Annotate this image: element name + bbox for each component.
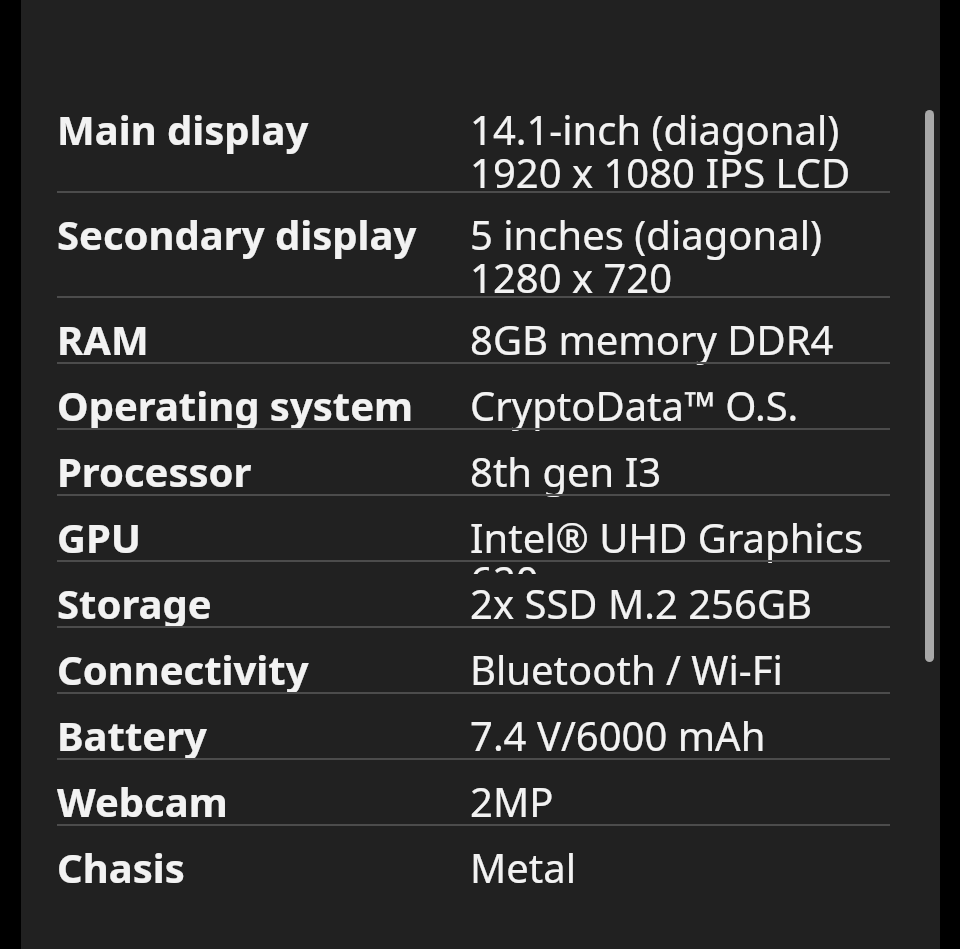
staticText: Webcam — [57, 774, 228, 828]
staticText: Connectivity — [57, 642, 309, 696]
staticText: Storage — [57, 576, 212, 630]
button[interactable]: Connectivity — [57, 628, 890, 692]
staticText: CryptoData™ O.S. — [470, 378, 890, 432]
staticText: Secondary display — [57, 207, 417, 261]
button[interactable]: Processor — [57, 430, 890, 494]
button[interactable]: Storage — [57, 562, 890, 626]
staticText: Main display — [57, 102, 309, 156]
button[interactable]: Webcam — [57, 760, 890, 824]
staticText: 5 inches (diagonal) 1280 x 720 — [470, 207, 890, 304]
staticText: 2MP — [470, 774, 890, 828]
staticText: 2x SSD M.2 256GB — [470, 576, 890, 630]
button[interactable]: Chasis — [57, 826, 890, 890]
staticText: RAM — [57, 312, 149, 366]
staticText: Processor — [57, 444, 252, 498]
staticText: Chasis — [57, 840, 185, 894]
button[interactable]: RAM — [57, 298, 890, 362]
button[interactable]: Operating system — [57, 364, 890, 428]
staticText: Battery — [57, 708, 207, 762]
button[interactable]: Battery — [57, 694, 890, 758]
button[interactable]: Main display — [57, 88, 890, 191]
staticText: 14.1-inch (diagonal) 1920 x 1080 IPS LCD — [470, 102, 890, 199]
staticText: GPU — [57, 510, 142, 564]
staticText: 8th gen I3 — [470, 444, 890, 498]
staticText: Operating system — [57, 378, 414, 432]
staticText: Bluetooth / Wi-Fi — [470, 642, 890, 696]
staticText: Intel® UHD Graphics 620 — [470, 510, 890, 574]
staticText: 7.4 V/6000 mAh — [470, 708, 890, 762]
button[interactable]: Secondary display — [57, 193, 890, 296]
staticText: 8GB memory DDR4 — [470, 312, 890, 366]
button[interactable]: GPU — [57, 496, 890, 560]
staticText: Metal — [470, 840, 890, 894]
